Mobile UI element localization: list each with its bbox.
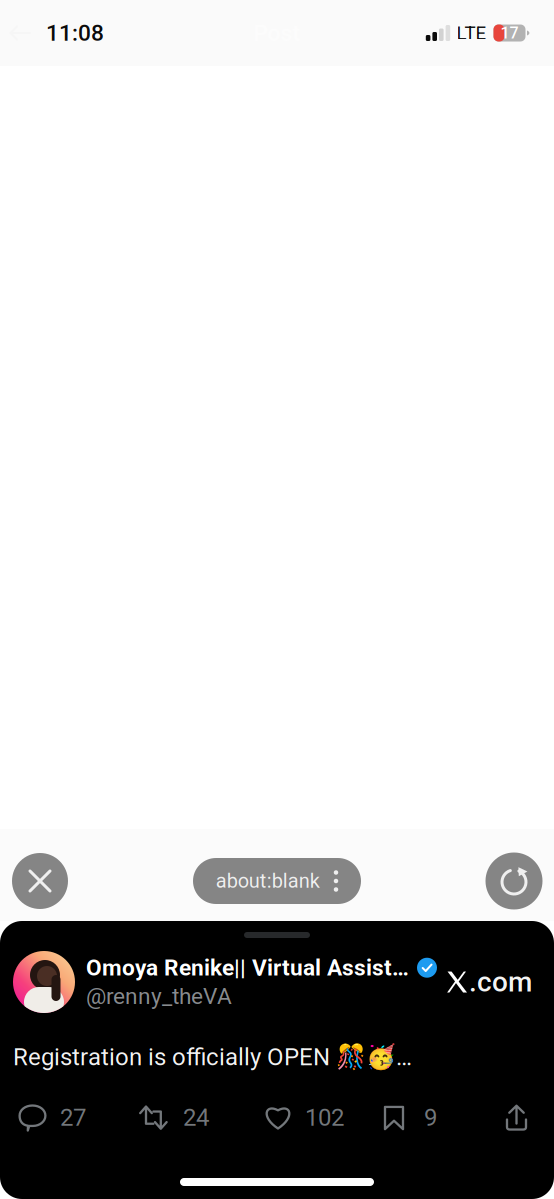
staticText: Registration is officially OPEN 🎊🥳…: [13, 1043, 412, 1071]
staticText: about:blank: [216, 869, 320, 893]
button[interactable]: Reload: [474, 841, 554, 921]
staticText: @renny_theVA: [86, 983, 232, 1010]
staticText: .com: [469, 966, 532, 998]
staticText: 27: [60, 1104, 86, 1132]
button[interactable]: 9: [381, 1103, 502, 1132]
button[interactable]: Share: [502, 1103, 531, 1132]
staticText: Omoya Renike|| Virtual Assist…: [86, 954, 409, 981]
staticText: 24: [183, 1104, 209, 1132]
button[interactable]: 102: [263, 1103, 381, 1132]
staticText: 9: [424, 1104, 437, 1132]
button[interactable]: Close: [0, 841, 80, 921]
button[interactable]: 27: [18, 1103, 138, 1132]
staticText: 102: [305, 1104, 344, 1132]
staticText: LTE: [456, 22, 486, 44]
staticText: 11:08: [46, 20, 104, 46]
button[interactable]: about:blank: [193, 858, 361, 904]
button[interactable]: 24: [138, 1103, 263, 1132]
staticText: 17: [500, 24, 518, 42]
